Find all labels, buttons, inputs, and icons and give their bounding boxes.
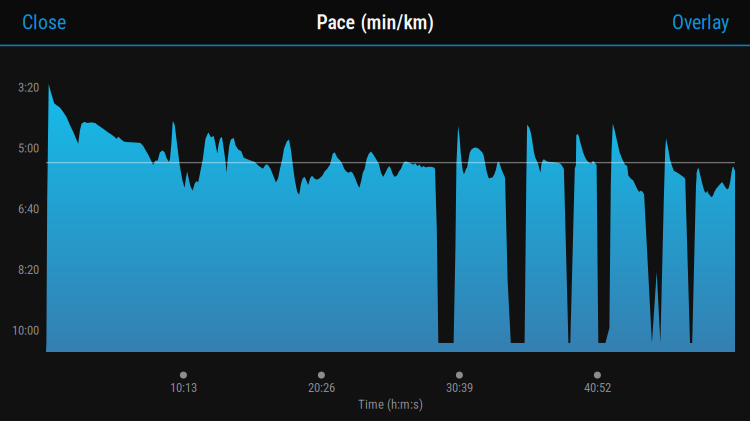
staticText: 10:13: [170, 380, 197, 395]
staticText: Close: [22, 11, 66, 34]
staticText: 5:00: [18, 141, 39, 156]
staticText: 3:20: [18, 80, 39, 95]
staticText: 10:00: [12, 323, 39, 338]
staticText: Overlay: [672, 11, 729, 34]
staticText: 6:40: [18, 202, 39, 216]
button[interactable]: Close: [0, 0, 80, 45]
button[interactable]: Overlay: [658, 0, 750, 45]
staticText: 8:20: [18, 262, 39, 277]
staticText: Time (h:m:s): [358, 397, 423, 412]
staticText: 20:26: [308, 380, 335, 395]
staticText: 40:52: [584, 380, 611, 395]
staticText: 30:39: [446, 380, 473, 395]
staticText: Pace (min/km): [316, 11, 433, 34]
